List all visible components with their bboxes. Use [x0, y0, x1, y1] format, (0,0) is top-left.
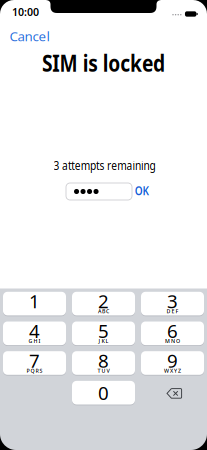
button[interactable]: 9 [141, 351, 204, 375]
staticText [34, 308, 35, 315]
button[interactable]: 6 [141, 321, 204, 345]
button[interactable]: SIM PIN [66, 183, 132, 200]
staticText: OK [133, 182, 150, 198]
staticText: P Q R S [26, 367, 42, 374]
button[interactable]: 1 [3, 292, 66, 315]
staticText: 4 [29, 318, 40, 343]
staticText: M N O [165, 337, 180, 344]
staticText: A B C [98, 308, 109, 315]
staticText: 9 [167, 348, 178, 373]
button[interactable]: Delete [166, 388, 182, 399]
staticText: 0 [98, 380, 109, 405]
button[interactable]: 2 [72, 292, 135, 315]
staticText: 1 [29, 289, 40, 313]
staticText: 3 [167, 289, 178, 313]
staticText: J K L [98, 337, 108, 344]
staticText: 7 [29, 348, 40, 373]
staticText: SIM is locked [26, 47, 180, 78]
staticText: 10:00 [12, 5, 39, 19]
staticText: W X Y Z [164, 367, 181, 374]
staticText: 5 [98, 318, 109, 343]
button[interactable]: 3 [141, 292, 204, 315]
button[interactable]: 7 [3, 351, 66, 375]
staticText: 2 [98, 289, 109, 313]
button[interactable]: 5 [72, 321, 135, 345]
staticText: Cancel [9, 27, 49, 45]
button[interactable]: Cancel [9, 27, 49, 45]
staticText: 3 attempts remaining [44, 157, 164, 173]
staticText: 6 [167, 318, 178, 343]
button[interactable]: OK [133, 182, 150, 198]
staticText: T U V [97, 367, 109, 374]
staticText: D E F [166, 308, 178, 315]
button[interactable]: 8 [72, 351, 135, 375]
button[interactable]: 4 [3, 321, 66, 345]
staticText: G H I [28, 337, 40, 344]
button[interactable]: 0 [72, 380, 135, 405]
staticText: 8 [98, 348, 109, 373]
